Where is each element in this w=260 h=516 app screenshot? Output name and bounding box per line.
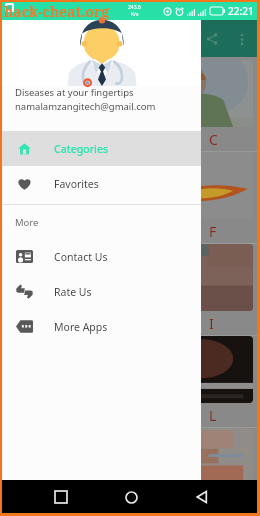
staticText: Favorites: [54, 177, 99, 191]
button[interactable]: M: [2, 428, 257, 480]
staticText: Rate Us: [54, 285, 92, 299]
staticText: K/s: [131, 11, 139, 18]
staticText: hack-cheat.org: [4, 2, 110, 21]
staticText: Contact Us: [54, 250, 108, 264]
staticText: namalamzangitech@gmail.com: [15, 100, 156, 113]
staticText: C: [209, 130, 218, 149]
staticText: More Apps: [54, 320, 108, 334]
button[interactable]: Rate Us: [2, 274, 201, 309]
button[interactable]: Home: [116, 482, 146, 512]
button[interactable]: F: [2, 152, 257, 244]
staticText: 22:21: [228, 4, 254, 18]
staticText: L: [209, 406, 217, 425]
button[interactable]: Favorites: [2, 166, 201, 201]
button[interactable]: I: [2, 244, 257, 336]
button[interactable]: Categories: [2, 131, 201, 166]
button[interactable]: Share: [199, 26, 225, 52]
staticText: 243.6: [128, 4, 141, 11]
button[interactable]: More options: [229, 26, 255, 52]
button[interactable]: Recents: [46, 482, 76, 512]
button[interactable]: More Apps: [2, 309, 201, 344]
button[interactable]: Contact Us: [2, 239, 201, 274]
button[interactable]: Back: [187, 482, 217, 512]
staticText: Diseases at your fingertips: [15, 86, 134, 99]
button[interactable]: L: [2, 336, 257, 428]
staticText: More: [15, 216, 39, 229]
staticText: Categories: [54, 142, 109, 156]
staticText: I: [209, 314, 214, 333]
staticText: F: [209, 222, 217, 241]
button[interactable]: C: [2, 60, 257, 152]
